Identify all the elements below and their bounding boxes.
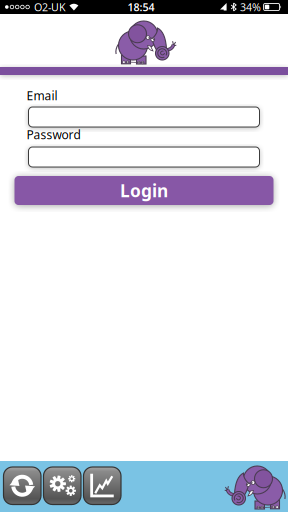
staticText: O2-UK [34, 0, 66, 14]
button[interactable]: Settings [43, 467, 81, 504]
staticText: Login [120, 179, 168, 202]
button[interactable]: Refresh [3, 467, 41, 504]
staticText: Email [26, 87, 57, 103]
staticText: Password [26, 126, 80, 142]
button[interactable]: Login [14, 176, 273, 205]
button[interactable]: Charts [83, 467, 121, 504]
staticText: 34% [240, 0, 261, 14]
staticText: 18:54 [127, 0, 154, 14]
